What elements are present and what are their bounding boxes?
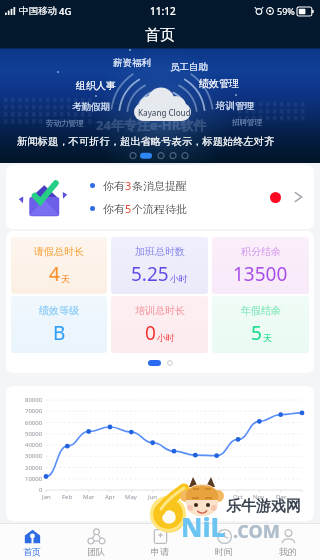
staticText: 中国移动: [19, 5, 57, 17]
staticText: 绩效等级: [39, 304, 79, 317]
staticText: 5: [251, 320, 262, 346]
staticText: 5.25: [131, 261, 169, 287]
staticText: 11:12: [150, 4, 176, 18]
button[interactable]: 培训总时长: [111, 296, 208, 353]
staticText: 条消息提醒: [132, 179, 187, 193]
staticText: 60000: [25, 419, 43, 427]
button[interactable]: 我的: [256, 524, 320, 560]
button[interactable]: 团队: [64, 524, 128, 560]
staticText: Jan: [42, 493, 51, 501]
staticText: 0: [145, 320, 156, 346]
staticText: 招聘管理: [232, 118, 262, 127]
staticText: 乐牛游戏网: [226, 497, 301, 516]
staticText: 薪资福利: [113, 57, 151, 69]
staticText: 加班总时数: [135, 245, 185, 258]
staticText: Feb: [62, 493, 73, 501]
staticText: 24年专注e-HR软件: [96, 116, 207, 134]
staticText: 3: [125, 178, 132, 193]
staticText: Nov: [253, 493, 265, 501]
staticText: 4G: [59, 5, 72, 18]
other: 申请: [152, 528, 169, 545]
staticText: Jul: [171, 493, 178, 501]
staticText: Kayang Cloud: [138, 107, 191, 118]
staticText: Apr: [105, 493, 116, 501]
staticText: 劳动力管理: [46, 119, 84, 128]
staticText: 新闻标题，不可折行，超出省略号表示，标题始终左对齐: [17, 135, 275, 148]
staticText: Sep: [212, 493, 223, 501]
staticText: 天: [263, 332, 272, 343]
staticText: 组织人事: [76, 79, 116, 92]
staticText: 10000: [25, 475, 43, 483]
staticText: 我的: [279, 546, 297, 557]
staticText: 首页: [145, 26, 175, 45]
staticText: Mar: [83, 493, 95, 501]
staticText: 小时: [170, 273, 188, 284]
staticText: 申请: [151, 546, 169, 557]
staticText: B: [53, 320, 66, 346]
staticText: 40000: [25, 441, 43, 449]
staticText: 绩效管理: [199, 77, 239, 90]
staticText: 13500: [233, 261, 288, 287]
staticText: Dec: [276, 493, 287, 501]
staticText: 你有: [103, 179, 125, 193]
button[interactable]: 年假结余: [212, 296, 309, 353]
button[interactable]: 时间: [192, 524, 256, 560]
staticText: 培训管理: [216, 100, 254, 112]
button[interactable]: 你有: [6, 165, 314, 229]
staticText: Jun: [148, 493, 158, 501]
other: 我的: [280, 528, 297, 545]
staticText: 培训总时长: [135, 304, 185, 317]
staticText: 80000: [25, 396, 43, 404]
staticText: 时间: [215, 546, 233, 557]
staticText: 小时: [157, 332, 175, 343]
button[interactable]: 加班总时数: [111, 237, 208, 294]
staticText: .COM: [233, 519, 280, 544]
staticText: Aug: [189, 493, 201, 501]
staticText: 0: [39, 486, 43, 494]
staticText: Oct: [233, 493, 243, 501]
button[interactable]: 请假总时长: [11, 237, 107, 294]
staticText: 积分结余: [241, 245, 281, 258]
staticText: 个流程待批: [132, 202, 187, 216]
staticText: 20000: [25, 464, 43, 472]
staticText: 70000: [25, 407, 43, 415]
staticText: 59%: [277, 5, 295, 17]
staticText: 请假总时长: [34, 245, 84, 258]
staticText: 50000: [25, 430, 43, 438]
other: 团队: [88, 528, 105, 545]
staticText: 30000: [25, 452, 43, 460]
staticText: 你有: [103, 202, 125, 216]
button[interactable]: 积分结余: [212, 237, 309, 294]
staticText: 考勤假期: [72, 101, 110, 113]
button[interactable]: 首页: [0, 524, 64, 560]
staticText: NiL: [181, 509, 226, 544]
button[interactable]: 申请: [128, 524, 192, 560]
other: 首页: [24, 528, 41, 545]
staticText: 首页: [23, 546, 41, 557]
staticText: May: [125, 493, 137, 501]
other: 时间: [216, 528, 233, 545]
staticText: 4: [49, 261, 60, 287]
staticText: 5: [125, 201, 132, 216]
staticText: 团队: [87, 546, 105, 557]
staticText: 员工自助: [170, 61, 208, 73]
staticText: 天: [61, 273, 70, 284]
staticText: 年假结余: [241, 304, 281, 317]
button[interactable]: 绩效等级: [11, 296, 107, 353]
